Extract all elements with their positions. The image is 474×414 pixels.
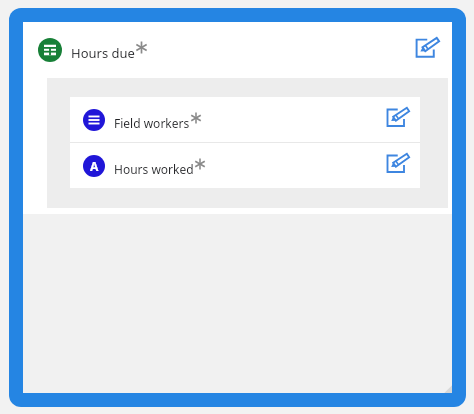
- button[interactable]: A: [70, 143, 420, 188]
- button[interactable]: Hours due: [23, 22, 452, 78]
- button[interactable]: Edit: [385, 107, 410, 132]
- button[interactable]: Edit: [414, 37, 440, 63]
- staticText: Hours due: [71, 44, 135, 62]
- staticText: Field workers: [114, 115, 190, 131]
- button[interactable]: Field workers: [70, 97, 420, 142]
- staticText: A: [90, 158, 99, 174]
- other: Resize: [440, 381, 452, 393]
- staticText: Hours worked: [114, 161, 194, 177]
- button[interactable]: Edit: [385, 153, 410, 178]
